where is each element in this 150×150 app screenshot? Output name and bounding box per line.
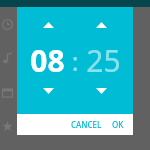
staticText: 08 bbox=[30, 40, 65, 81]
button[interactable]: 08 bbox=[30, 40, 65, 81]
staticText: : bbox=[65, 43, 86, 78]
button[interactable]: 25 bbox=[86, 40, 121, 81]
staticText: 25 bbox=[86, 40, 121, 81]
button[interactable]: Decrease hour bbox=[40, 83, 56, 99]
staticText: CANCEL bbox=[71, 119, 102, 130]
button[interactable]: CANCEL bbox=[66, 116, 107, 133]
button[interactable]: Increase hour bbox=[40, 17, 56, 33]
button[interactable]: OK bbox=[107, 116, 129, 133]
staticText: OK bbox=[112, 119, 124, 130]
button[interactable]: Increase minute bbox=[93, 17, 109, 33]
button[interactable]: Decrease minute bbox=[93, 83, 109, 99]
